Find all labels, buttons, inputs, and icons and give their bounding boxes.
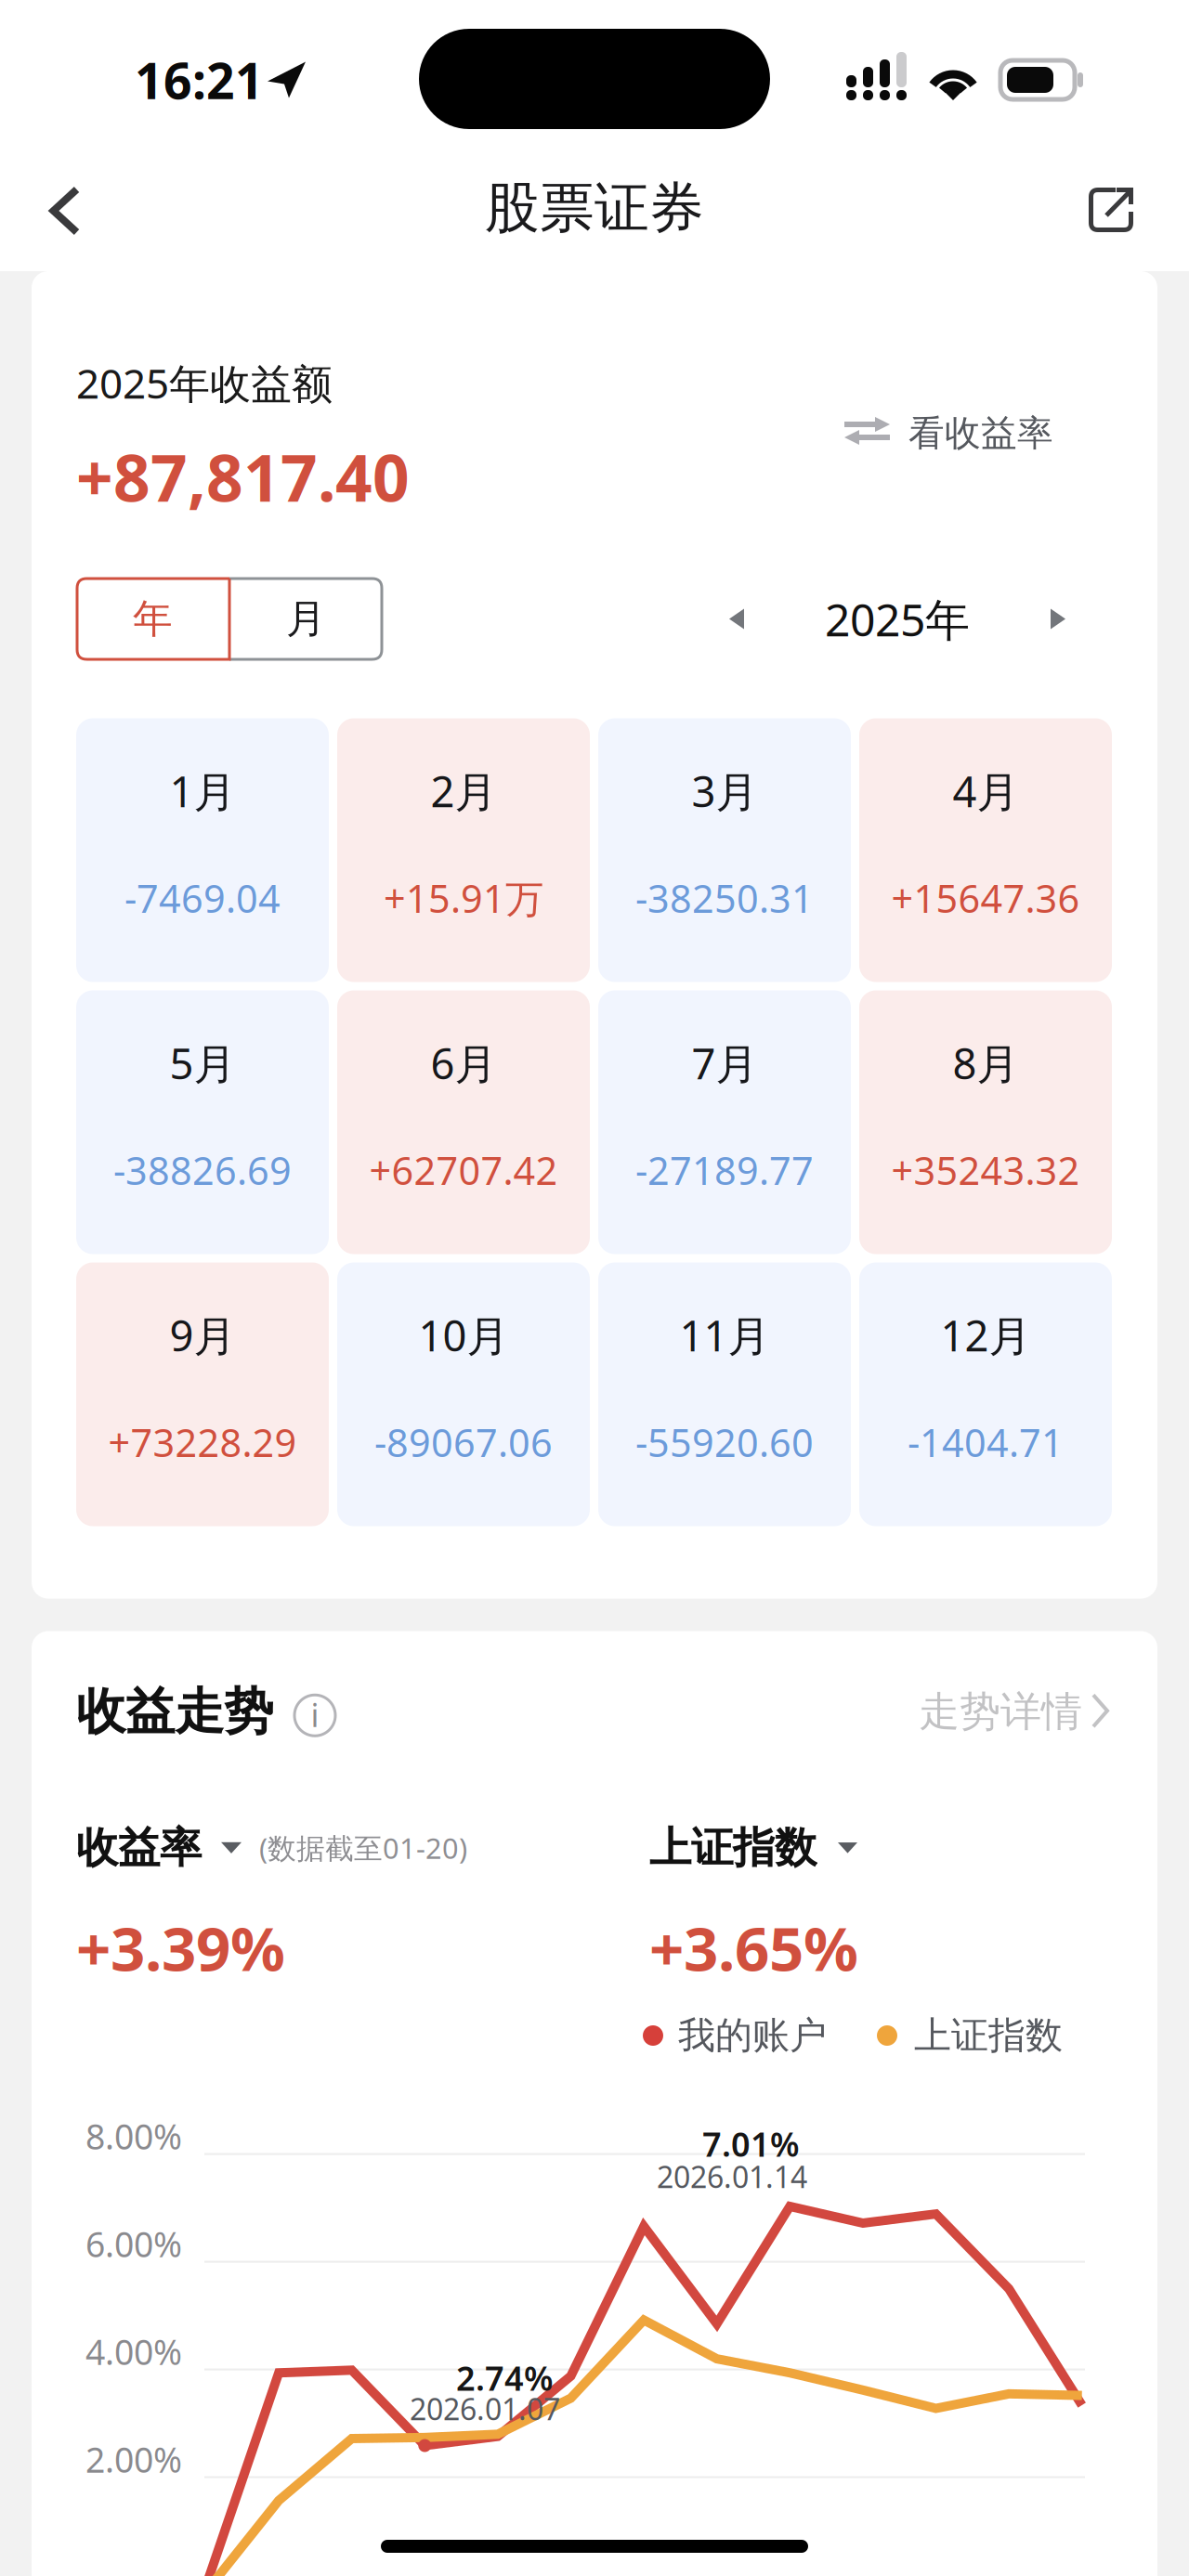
staticText: 3月 bbox=[692, 763, 758, 819]
staticText: 2.74% bbox=[456, 2356, 554, 2400]
staticText: 上证指数 bbox=[649, 1822, 817, 1874]
staticText: 7.01% bbox=[702, 2122, 800, 2166]
staticText: 2026.01.07 bbox=[410, 2389, 560, 2428]
staticText: 10月 bbox=[418, 1307, 509, 1363]
button[interactable]: 2月 bbox=[337, 718, 590, 982]
button[interactable]: Previous year bbox=[729, 591, 785, 647]
staticText: 6月 bbox=[431, 1035, 497, 1091]
button[interactable]: 12月 bbox=[859, 1262, 1112, 1526]
staticText: 16:21 bbox=[135, 47, 264, 113]
button[interactable]: Share bbox=[1063, 149, 1159, 271]
button[interactable]: 6月 bbox=[337, 990, 590, 1254]
staticText: 上证指数 bbox=[914, 2013, 1063, 2058]
button[interactable]: 10月 bbox=[337, 1262, 590, 1526]
button[interactable]: 7月 bbox=[598, 990, 851, 1254]
staticText: 2026.01.14 bbox=[657, 2157, 807, 2196]
staticText: +3.39% bbox=[76, 1907, 285, 1988]
button[interactable]: 3月 bbox=[598, 718, 851, 982]
button[interactable]: 4月 bbox=[859, 718, 1112, 982]
staticText: 收益率 bbox=[76, 1822, 202, 1874]
button[interactable]: 5月 bbox=[76, 990, 329, 1254]
button[interactable]: Next year bbox=[1010, 591, 1065, 647]
staticText: 收益走势 bbox=[76, 1681, 273, 1742]
staticText: +3.65% bbox=[649, 1907, 858, 1988]
staticText: +15.91万 bbox=[384, 873, 543, 924]
staticText: 1月 bbox=[170, 763, 235, 819]
staticText: 4月 bbox=[953, 763, 1019, 819]
staticText: +35243.32 bbox=[891, 1145, 1080, 1196]
staticText: 11月 bbox=[679, 1307, 770, 1363]
staticText: 股票证券 bbox=[485, 175, 704, 242]
button[interactable]: 看收益率 bbox=[844, 356, 1113, 460]
staticText: +87,817.40 bbox=[76, 434, 410, 520]
staticText: i bbox=[311, 1693, 319, 1736]
staticText: +62707.42 bbox=[369, 1145, 558, 1196]
button[interactable]: 1月 bbox=[76, 718, 329, 982]
staticText: 年 bbox=[133, 595, 173, 643]
staticText: 12月 bbox=[941, 1307, 1031, 1363]
staticText: 9月 bbox=[170, 1307, 235, 1363]
button[interactable]: 11月 bbox=[598, 1262, 851, 1526]
staticText: 2月 bbox=[431, 763, 497, 819]
staticText: -89067.06 bbox=[374, 1417, 553, 1468]
staticText: -55920.60 bbox=[635, 1417, 814, 1468]
staticText: +15647.36 bbox=[891, 873, 1080, 924]
button[interactable]: 月 bbox=[229, 577, 383, 661]
staticText: 月 bbox=[286, 595, 326, 643]
staticText: -38826.69 bbox=[113, 1145, 292, 1196]
staticText: 2025年 bbox=[825, 589, 970, 648]
button[interactable]: 9月 bbox=[76, 1262, 329, 1526]
button[interactable]: 8月 bbox=[859, 990, 1112, 1254]
staticText: 2.00% bbox=[85, 2436, 182, 2482]
button[interactable]: 走势详情 bbox=[919, 1687, 1113, 1737]
staticText: 8.00% bbox=[85, 2113, 182, 2159]
staticText: (数据截至01-20) bbox=[259, 1829, 467, 1867]
staticText: 2025年收益额 bbox=[76, 356, 333, 410]
staticText: 8月 bbox=[953, 1035, 1019, 1091]
staticText: 7月 bbox=[692, 1035, 758, 1091]
staticText: 5月 bbox=[170, 1035, 235, 1091]
staticText: 我的账户 bbox=[678, 2013, 827, 2058]
staticText: 看收益率 bbox=[908, 411, 1053, 455]
staticText: 6.00% bbox=[85, 2221, 182, 2267]
staticText: -7469.04 bbox=[124, 873, 281, 924]
button[interactable]: Back bbox=[20, 153, 117, 276]
button[interactable]: 年 bbox=[76, 577, 229, 661]
staticText: -38250.31 bbox=[635, 873, 814, 924]
staticText: 4.00% bbox=[85, 2329, 182, 2375]
staticText: 走势详情 bbox=[919, 1687, 1082, 1737]
staticText: -1404.71 bbox=[908, 1417, 1064, 1468]
staticText: +73228.29 bbox=[108, 1417, 297, 1468]
staticText: -27189.77 bbox=[635, 1145, 814, 1196]
